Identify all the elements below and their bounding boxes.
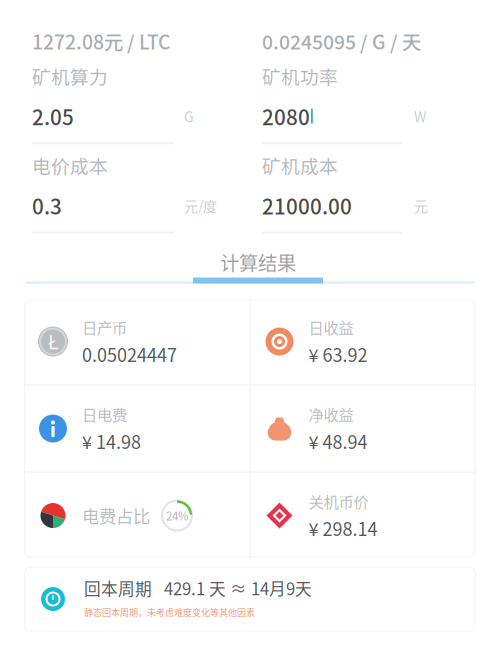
staticText: 净收益	[308, 403, 353, 425]
staticText: 元/度	[184, 195, 217, 216]
staticText: 0.05024447	[82, 341, 177, 367]
staticText: 元	[414, 195, 428, 216]
staticText: 关机币价	[308, 490, 368, 512]
button[interactable]: 计算结果	[193, 251, 323, 283]
staticText: 日电费	[82, 403, 127, 425]
staticText: 日产币	[82, 316, 127, 338]
staticText: ¥ 48.94	[308, 428, 367, 454]
staticText: 24%	[166, 507, 188, 524]
staticText: 矿机算力	[32, 62, 108, 89]
staticText: 0.3	[32, 190, 62, 220]
staticText: 2.05	[32, 101, 74, 131]
staticText: 矿机成本	[262, 152, 338, 179]
staticText: 2080	[262, 101, 310, 131]
staticText: 电费占比	[82, 503, 150, 528]
staticText: ¥ 63.92	[308, 341, 367, 367]
staticText: W	[414, 106, 426, 126]
staticText: 矿机功率	[262, 62, 338, 89]
staticText: Ł	[48, 328, 58, 355]
staticText: 计算结果	[220, 248, 296, 276]
staticText: ¥ 298.14	[308, 515, 377, 541]
staticText: 静态回本周期，未考虑难度变化等其他因素	[84, 605, 255, 619]
staticText: 1272.08元 / LTC	[32, 27, 170, 55]
staticText: 0.0245095 / G / 天	[262, 27, 421, 55]
staticText: 日收益	[308, 316, 353, 338]
staticText: G	[184, 106, 194, 126]
staticText: 21000.00	[262, 190, 352, 220]
staticText: 电价成本	[32, 152, 108, 179]
staticText: 回本周期 429.1 天 ≈ 14月9天	[84, 576, 312, 600]
staticText: ¥ 14.98	[82, 428, 141, 454]
